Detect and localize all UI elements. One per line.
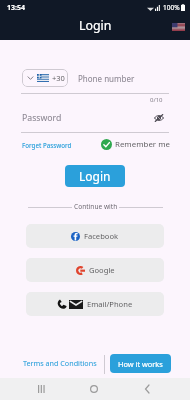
staticText: Login xyxy=(79,168,111,184)
staticText: Google xyxy=(89,265,115,275)
button[interactable]: Language xyxy=(172,23,185,31)
staticText: 13:54 xyxy=(7,3,25,13)
button[interactable]: Email/Phone xyxy=(26,292,164,316)
button[interactable]: Forget Password xyxy=(22,141,72,149)
staticText: Email/Phone xyxy=(87,299,133,309)
staticText: Password xyxy=(22,112,62,124)
staticText: 100% xyxy=(163,3,180,12)
button[interactable]: Show password xyxy=(152,111,166,125)
staticText: 0/10 xyxy=(150,96,163,104)
button[interactable]: How it works xyxy=(110,354,171,373)
button[interactable]: Recents xyxy=(32,381,52,397)
staticText: Continue with xyxy=(74,202,118,211)
button[interactable]: Home xyxy=(84,381,104,397)
button[interactable]: Google xyxy=(26,258,164,282)
button[interactable]: Remember me xyxy=(101,139,171,150)
staticText: How it works xyxy=(118,359,163,369)
staticText: Remember me xyxy=(115,139,171,150)
button[interactable]: +30 xyxy=(28,69,65,87)
staticText: +30 xyxy=(52,73,65,83)
button[interactable]: Login xyxy=(65,165,125,187)
button[interactable]: Back xyxy=(137,381,157,397)
button[interactable]: Terms and Conditions xyxy=(23,358,97,368)
button[interactable]: Facebook xyxy=(26,224,164,248)
staticText: Phone number xyxy=(78,73,135,84)
staticText: Facebook xyxy=(84,231,119,241)
staticText: Login xyxy=(79,17,112,34)
